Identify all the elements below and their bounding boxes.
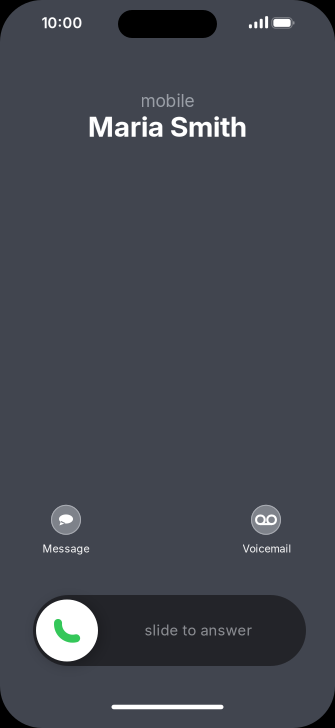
button[interactable]: Voicemail bbox=[233, 497, 299, 557]
staticText: Maria Smith bbox=[88, 110, 247, 143]
staticText: 10:00 bbox=[41, 14, 82, 31]
staticText: Voicemail bbox=[242, 542, 291, 555]
staticText: slide to answer bbox=[144, 621, 252, 639]
button[interactable]: Message bbox=[33, 497, 99, 557]
staticText: Message bbox=[42, 542, 89, 555]
button[interactable]: slide to answer bbox=[33, 595, 306, 666]
staticText: mobile bbox=[140, 91, 194, 111]
